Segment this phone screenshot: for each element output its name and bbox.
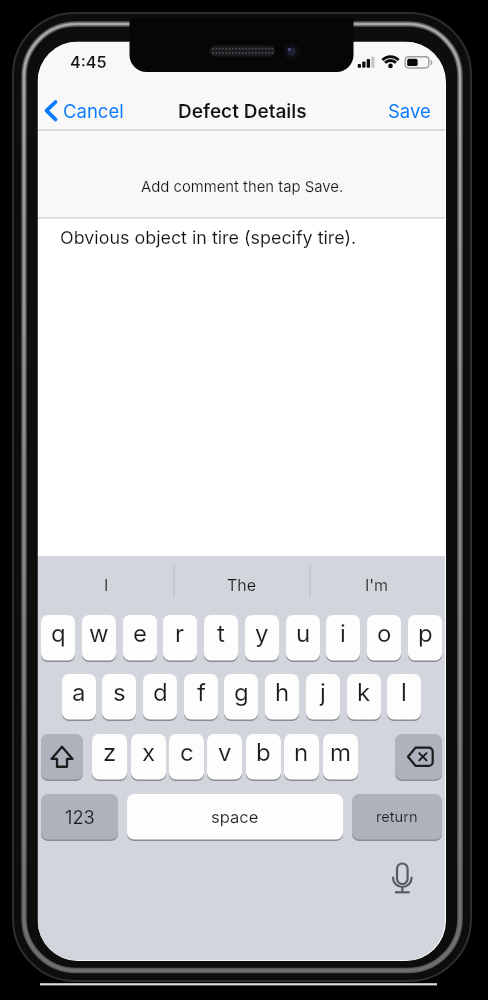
button[interactable]: c <box>169 734 204 781</box>
button[interactable]: a <box>62 674 96 721</box>
button[interactable] <box>39 560 173 600</box>
button[interactable]: k <box>347 674 381 721</box>
button[interactable]: l <box>387 674 421 721</box>
staticText: v <box>218 738 232 767</box>
staticText: g <box>234 678 249 707</box>
button[interactable]: i <box>326 615 360 662</box>
button[interactable]: 123 <box>41 794 118 841</box>
staticText: k <box>357 678 371 707</box>
staticText: return <box>376 808 418 826</box>
staticText: c <box>180 738 194 767</box>
staticText: m <box>330 738 352 767</box>
button[interactable] <box>38 219 446 556</box>
button[interactable]: v <box>207 734 242 781</box>
staticText: s <box>113 678 126 707</box>
staticText: a <box>72 678 86 707</box>
button[interactable]: w <box>82 615 116 662</box>
button[interactable]: x <box>131 734 166 781</box>
staticText: t <box>217 619 225 648</box>
staticText: I <box>104 575 109 594</box>
button[interactable]: s <box>102 674 136 721</box>
button[interactable]: r <box>163 615 197 662</box>
staticText: y <box>255 619 269 648</box>
staticText: 123 <box>65 806 95 828</box>
staticText: l <box>401 678 407 707</box>
button[interactable]: g <box>224 674 258 721</box>
button[interactable]: y <box>245 615 279 662</box>
button[interactable]: q <box>41 615 75 662</box>
staticText: space <box>211 807 259 827</box>
staticText: o <box>377 619 392 648</box>
button[interactable]: space <box>127 794 343 841</box>
button[interactable] <box>388 860 418 896</box>
staticText: b <box>256 738 271 767</box>
button[interactable]: t <box>204 615 238 662</box>
button[interactable]: h <box>265 674 299 721</box>
button[interactable] <box>395 734 442 781</box>
staticText: I'm <box>365 575 389 594</box>
button[interactable] <box>311 560 445 600</box>
button[interactable]: f <box>184 674 218 721</box>
staticText: The <box>227 575 257 594</box>
staticText: x <box>142 738 156 767</box>
staticText: w <box>89 619 109 648</box>
button[interactable]: j <box>306 674 340 721</box>
staticText: 4:45 <box>70 52 107 71</box>
button[interactable]: return <box>352 794 442 841</box>
button[interactable] <box>40 94 132 127</box>
button[interactable]: u <box>286 615 320 662</box>
button[interactable]: n <box>284 734 319 781</box>
staticText: f <box>197 678 206 707</box>
button[interactable]: d <box>143 674 177 721</box>
button[interactable] <box>175 560 309 600</box>
staticText: Obvious object in tire (specify tire). <box>60 227 357 249</box>
staticText: u <box>296 619 311 648</box>
staticText: Defect Details <box>178 100 307 123</box>
button[interactable]: Save <box>385 94 433 127</box>
button[interactable]: b <box>246 734 281 781</box>
staticText: Add comment then tap Save. <box>141 178 344 196</box>
staticText: d <box>153 678 168 707</box>
staticText: n <box>294 738 309 767</box>
staticText: Cancel <box>63 100 124 122</box>
button[interactable] <box>41 734 83 781</box>
staticText: r <box>175 619 185 648</box>
button[interactable]: o <box>367 615 401 662</box>
staticText: e <box>133 619 147 648</box>
staticText: i <box>340 619 346 648</box>
button[interactable]: p <box>408 615 442 662</box>
button[interactable]: m <box>323 734 358 781</box>
staticText: h <box>275 678 290 707</box>
button[interactable]: z <box>92 734 127 781</box>
staticText: Save <box>388 100 431 122</box>
button[interactable]: e <box>123 615 157 662</box>
staticText: q <box>51 619 66 648</box>
staticText: p <box>418 619 433 648</box>
staticText: z <box>103 738 117 767</box>
staticText: j <box>320 678 326 707</box>
